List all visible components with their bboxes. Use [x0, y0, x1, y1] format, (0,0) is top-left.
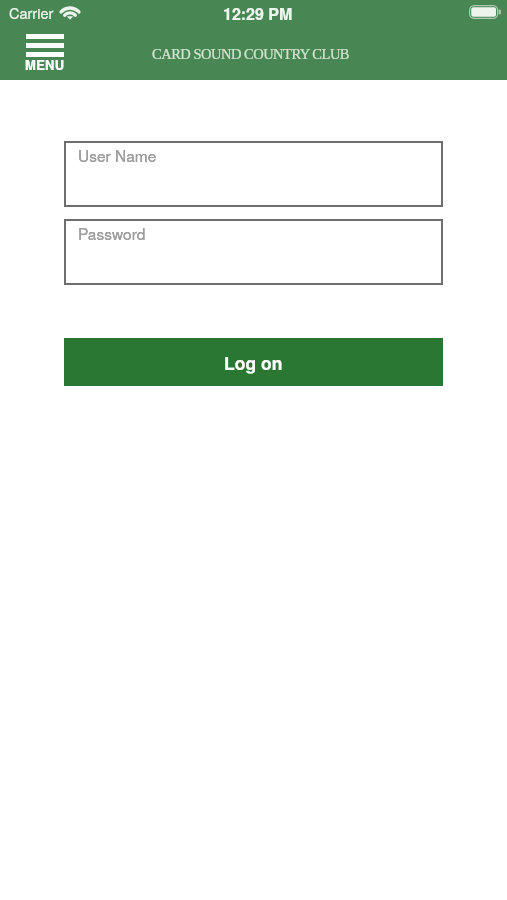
button[interactable]: Log on: [64, 338, 443, 386]
button[interactable]: User Name: [64, 141, 443, 207]
staticText: MENU: [25, 55, 65, 74]
staticText: User Name: [78, 144, 157, 166]
staticText: CARD SOUND COUNTRY CLUB: [152, 46, 350, 62]
staticText: Password: [78, 222, 146, 244]
staticText: User Name: [78, 144, 157, 166]
button[interactable]: Password: [64, 219, 443, 285]
staticText: Log on: [224, 350, 283, 375]
staticText: Carrier: [9, 2, 54, 23]
button[interactable]: Menu: [21, 30, 69, 80]
staticText: 12:29 PM: [223, 2, 293, 25]
staticText: Password: [78, 222, 146, 244]
